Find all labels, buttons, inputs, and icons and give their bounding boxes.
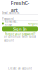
staticText: Remember me bbox=[5, 20, 18, 27]
staticText: Password bbox=[2, 17, 14, 21]
staticText: Email address bbox=[2, 11, 19, 15]
button[interactable]: Sign In bbox=[2, 26, 38, 31]
staticText: Forgot your password? bbox=[5, 32, 35, 36]
button[interactable]: Forgot your password? bbox=[2, 33, 38, 35]
button[interactable]: Create an account bbox=[2, 67, 38, 70]
staticText: Sign In bbox=[13, 26, 27, 31]
staticText: Forgot? bbox=[28, 22, 38, 25]
staticText: Create an account bbox=[8, 67, 32, 70]
staticText: or continue with social account bbox=[4, 35, 36, 42]
staticText: FreshCart bbox=[10, 0, 29, 14]
